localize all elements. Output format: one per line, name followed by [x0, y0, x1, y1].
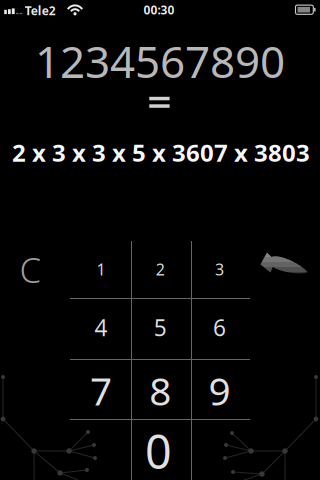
button[interactable]: C — [6, 241, 56, 297]
staticText: 0 — [145, 420, 172, 480]
staticText: Tele2 — [25, 3, 56, 18]
button[interactable]: 9 — [190, 361, 250, 420]
staticText: 1234567890 — [35, 32, 285, 90]
button[interactable]: 0 — [129, 421, 189, 480]
button[interactable]: 6 — [190, 298, 250, 357]
staticText: 2 — [156, 259, 165, 280]
staticText: 00:30 — [143, 2, 174, 18]
staticText: 3 — [215, 259, 224, 280]
staticText: 9 — [209, 365, 231, 416]
button[interactable]: 3 — [190, 240, 250, 299]
staticText: 7 — [90, 365, 112, 416]
button[interactable]: 2 — [130, 240, 190, 299]
staticText: 5 — [154, 312, 167, 342]
staticText: 4 — [94, 312, 107, 342]
button[interactable]: 8 — [130, 361, 190, 420]
staticText: 8 — [149, 365, 171, 416]
staticText: 2 x 3 x 3 x 5 x 3607 x 3803 — [12, 137, 310, 168]
button[interactable]: 7 — [71, 361, 131, 420]
staticText: C — [20, 246, 42, 292]
staticText: 6 — [213, 312, 226, 342]
button[interactable]: 4 — [71, 298, 131, 357]
staticText: 1 — [96, 259, 105, 280]
button[interactable]: 1 — [71, 240, 131, 299]
button[interactable]: Undo — [255, 244, 311, 284]
button[interactable]: 5 — [130, 298, 190, 357]
